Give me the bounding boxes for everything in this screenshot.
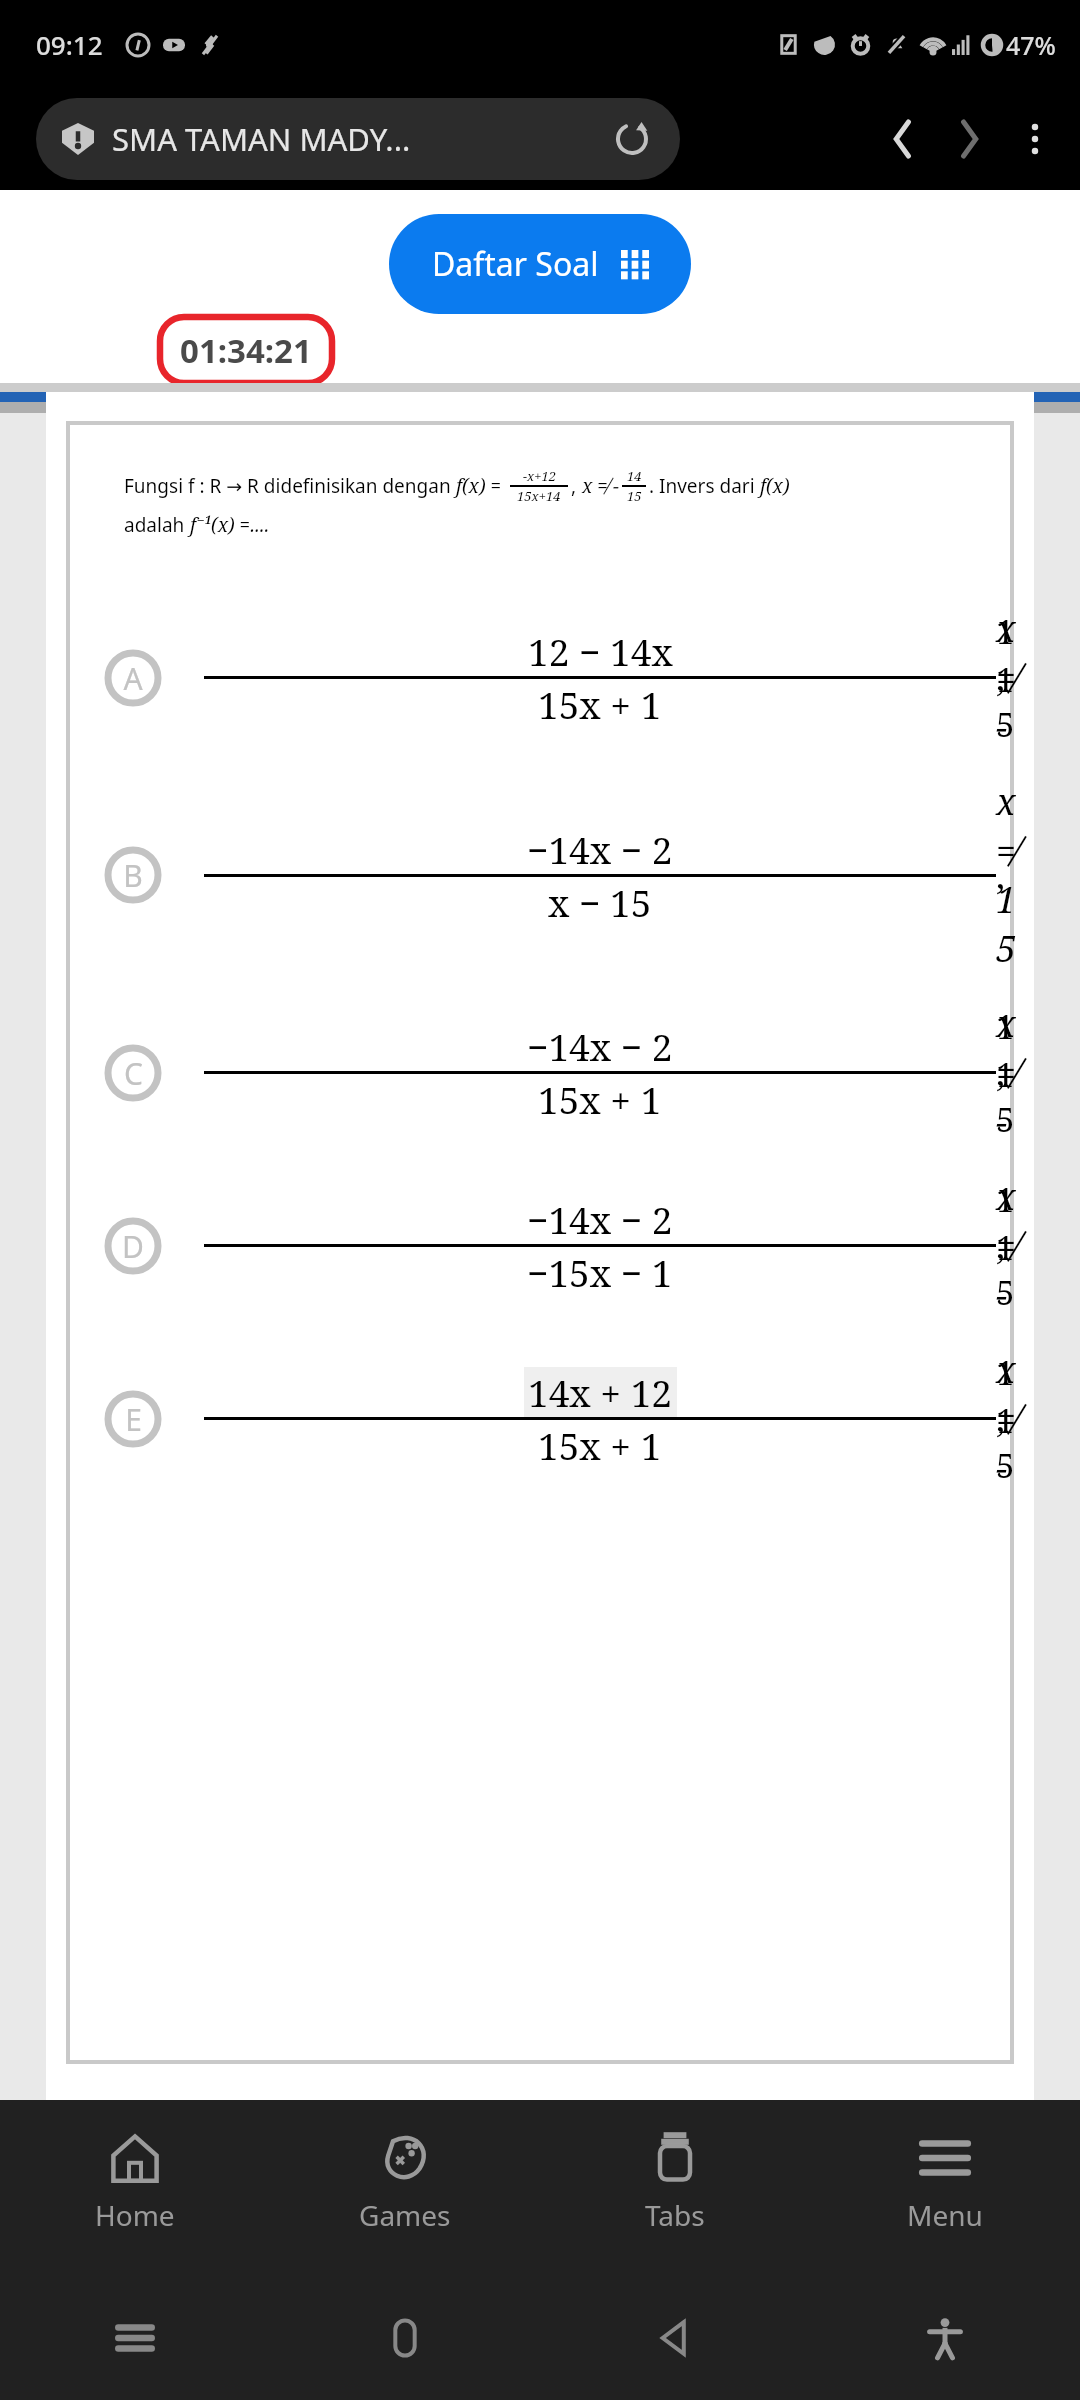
button[interactable]: D: [68, 1172, 1012, 1319]
staticText: adalah: [124, 512, 190, 538]
staticText: Fungsi f : R → R didefinisikan dengan: [124, 473, 456, 499]
staticText: 15x + 1: [538, 1074, 662, 1124]
staticText: Daftar Soal: [432, 242, 599, 286]
staticText: 12 − 14x: [528, 626, 673, 676]
staticText: 14x + 12: [528, 1367, 673, 1417]
staticText: 09:12: [36, 27, 103, 62]
staticText: 47%: [1006, 28, 1056, 62]
button[interactable]: More options: [1002, 106, 1068, 172]
staticText: Home: [95, 2196, 175, 2234]
staticText: E: [125, 1399, 142, 1440]
staticText: A: [123, 658, 143, 699]
staticText: 14: [627, 467, 642, 485]
button[interactable]: C: [68, 999, 1012, 1146]
button[interactable]: E: [68, 1345, 1012, 1492]
button[interactable]: Forward: [936, 106, 1002, 172]
button[interactable]: B: [68, 777, 1012, 973]
button[interactable]: Menu: [810, 2100, 1080, 2275]
staticText: Games: [359, 2196, 451, 2234]
staticText: Tabs: [645, 2196, 705, 2234]
staticText: −14x − 2: [527, 1194, 673, 1244]
button[interactable]: Accessibility: [810, 2275, 1080, 2400]
staticText: ,: [571, 473, 582, 499]
staticText: B: [123, 855, 143, 896]
button[interactable]: Daftar Soal: [389, 214, 691, 314]
staticText: 01:34:21: [180, 328, 312, 373]
staticText: −15x − 1: [527, 1247, 673, 1297]
staticText: f⁻¹(x) =....: [190, 512, 270, 538]
button[interactable]: Back: [870, 106, 936, 172]
button[interactable]: Recent apps: [0, 2275, 270, 2400]
staticText: −14x − 2: [527, 824, 673, 874]
staticText: . Invers dari: [649, 473, 760, 499]
button[interactable]: Site information: [36, 98, 680, 180]
staticText: x ≠ −: [582, 473, 619, 499]
staticText: 15x+14: [517, 487, 561, 505]
button[interactable]: Reload page: [610, 117, 654, 161]
button[interactable]: Home: [0, 2100, 270, 2275]
staticText: C: [124, 1053, 143, 1094]
staticText: f(x): [760, 473, 790, 499]
other: Site information: [62, 123, 94, 155]
staticText: −x+12: [523, 467, 556, 485]
button[interactable]: Back: [540, 2275, 810, 2400]
button[interactable]: A: [68, 604, 1012, 751]
staticText: 15x + 1: [538, 679, 662, 729]
staticText: Menu: [907, 2196, 983, 2234]
staticText: 15: [627, 487, 642, 505]
staticText: f(x) =: [456, 473, 507, 499]
button[interactable]: Games: [270, 2100, 540, 2275]
button[interactable]: Tabs: [540, 2100, 810, 2275]
staticText: x − 15: [548, 877, 652, 927]
staticText: SMA TAMAN MADY...: [112, 118, 411, 160]
staticText: D: [122, 1226, 144, 1267]
button[interactable]: Home: [270, 2275, 540, 2400]
staticText: −14x − 2: [527, 1021, 673, 1071]
staticText: 15x + 1: [538, 1420, 662, 1470]
